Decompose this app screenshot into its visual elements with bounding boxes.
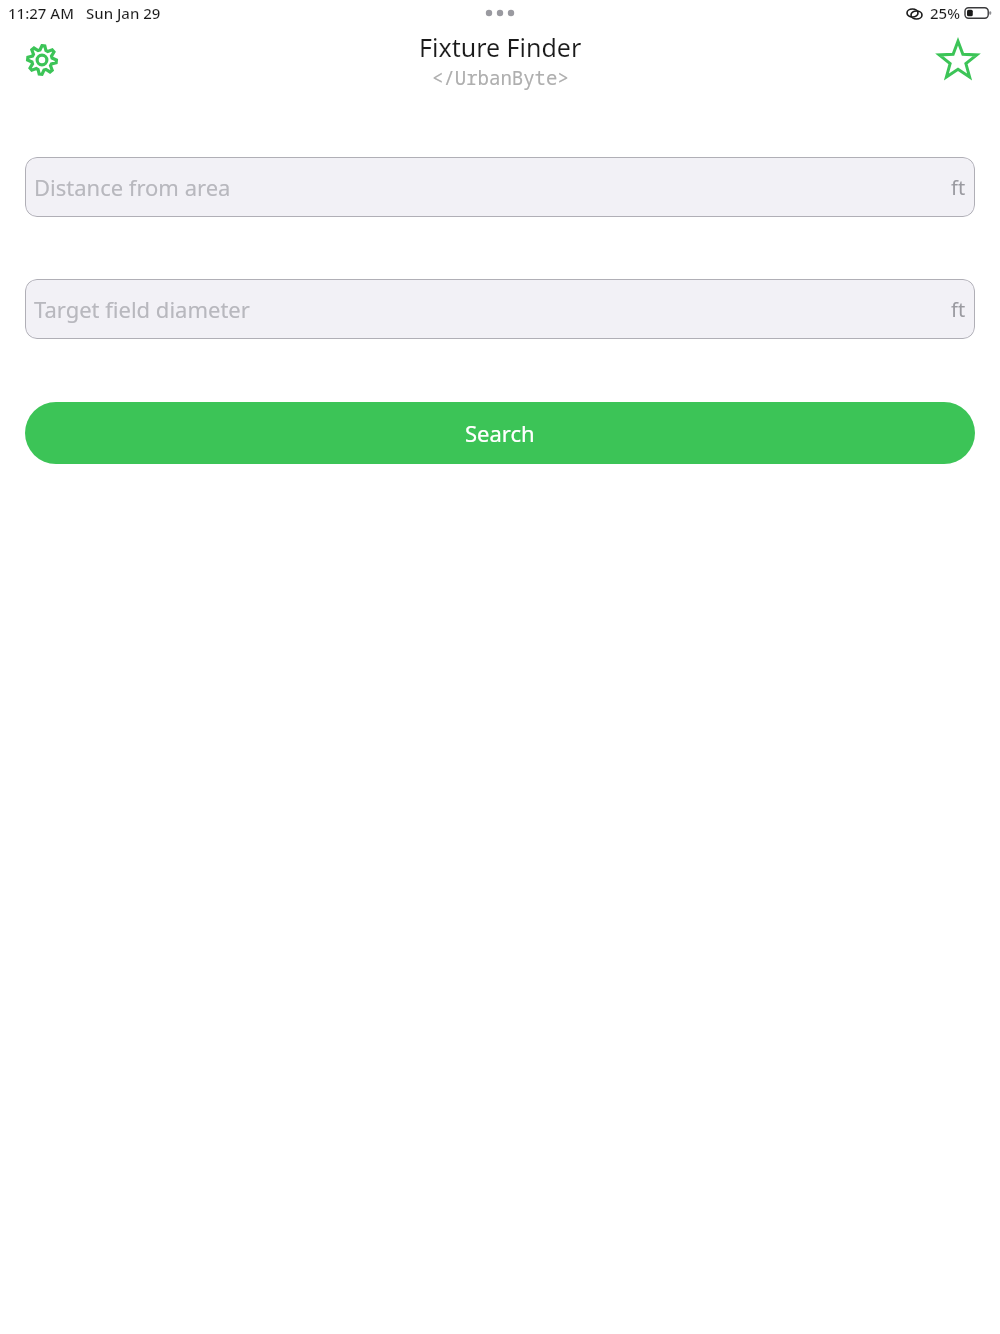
staticText: Fixture Finder — [419, 30, 582, 64]
staticText: Target field diameter — [34, 294, 250, 324]
staticText: 11:27 AM — [8, 3, 74, 23]
staticText: Distance from area — [34, 172, 231, 202]
button[interactable]: Target field diameter — [25, 279, 975, 339]
button[interactable]: Distance from area — [25, 157, 975, 217]
staticText: Sun Jan 29 — [86, 3, 161, 23]
button[interactable]: Favorite — [930, 32, 986, 88]
staticText: </UrbanByte> — [432, 65, 569, 91]
button[interactable]: Search — [25, 402, 975, 464]
staticText: 25% — [930, 3, 960, 23]
staticText: ft — [951, 296, 966, 323]
staticText: ft — [951, 174, 966, 201]
button[interactable]: Settings — [14, 32, 70, 88]
staticText: Search — [465, 418, 535, 448]
